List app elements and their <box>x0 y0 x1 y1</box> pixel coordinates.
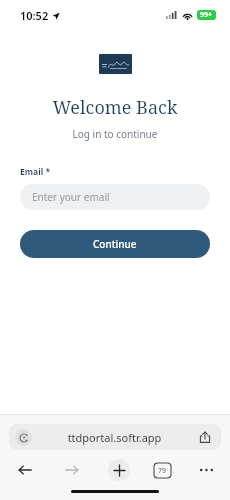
staticText: ttdportal.softr.app <box>32 430 197 445</box>
button[interactable]: Enter your email <box>20 184 210 210</box>
button[interactable]: More <box>196 460 216 480</box>
button[interactable]: Continue <box>20 230 210 258</box>
button[interactable]: Forward <box>61 459 83 481</box>
staticText: Email * <box>20 166 51 178</box>
staticText: 79 <box>158 466 167 476</box>
staticText: Continue <box>93 237 137 251</box>
staticText: Log in to continue <box>0 127 230 141</box>
staticText: Enter your email <box>32 190 110 204</box>
button[interactable]: Back <box>14 459 36 481</box>
staticText: Welcome Back <box>0 95 230 120</box>
staticText: 99+ <box>200 10 213 20</box>
button[interactable]: Page settings <box>9 424 221 450</box>
staticText: 10:52 <box>20 8 49 23</box>
button[interactable]: New tab <box>108 459 130 481</box>
button[interactable]: Page settings <box>15 429 32 446</box>
button[interactable]: Tabs <box>154 463 171 478</box>
button[interactable]: Logo <box>99 54 132 74</box>
button[interactable]: Share <box>197 429 213 445</box>
